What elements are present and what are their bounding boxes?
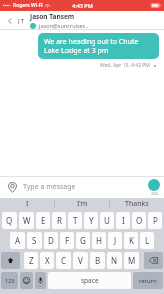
staticText: We are heading out to Chute Lake Lodge a… <box>44 37 153 55</box>
staticText: Z <box>29 255 34 266</box>
staticText: I <box>26 199 29 209</box>
button[interactable]: F <box>60 232 74 249</box>
button[interactable]: O <box>132 212 146 229</box>
button[interactable]: C <box>56 252 71 269</box>
button[interactable]: J <box>108 232 122 249</box>
button[interactable]: I <box>0 198 54 210</box>
button[interactable]: K <box>124 232 138 249</box>
staticText: J T <box>18 17 25 24</box>
staticText: E <box>41 215 46 226</box>
button[interactable]: W <box>19 212 34 229</box>
button[interactable]: Backspace <box>144 252 163 269</box>
button[interactable]: Back <box>4 15 16 27</box>
button[interactable]: D <box>44 232 58 249</box>
staticText: C <box>61 255 67 266</box>
staticText: H <box>96 235 102 246</box>
button[interactable]: X <box>40 252 54 269</box>
button[interactable]: P <box>148 212 162 229</box>
staticText: S <box>32 235 37 246</box>
button[interactable]: T <box>68 212 82 229</box>
button[interactable]: A <box>10 232 25 249</box>
staticText: space <box>81 276 99 285</box>
button[interactable]: Y <box>84 212 98 229</box>
staticText: Rogers Wi-Fi <box>13 2 43 9</box>
button[interactable]: Thanks <box>110 198 164 210</box>
staticText: R <box>57 215 62 226</box>
button[interactable]: I <box>116 212 130 229</box>
staticText: B <box>95 255 101 266</box>
button[interactable]: H <box>92 232 106 249</box>
button[interactable]: E <box>36 212 50 229</box>
button[interactable]: space <box>48 272 131 289</box>
button[interactable]: R <box>52 212 66 229</box>
staticText: K <box>129 235 134 246</box>
staticText: Wed, Apr 15, 4:42 PM <box>100 62 150 69</box>
staticText: D <box>48 235 54 246</box>
staticText: J <box>114 235 117 246</box>
button[interactable]: Share location <box>5 180 19 194</box>
button[interactable]: return <box>133 272 163 289</box>
staticText: U <box>104 215 110 226</box>
button[interactable]: Q <box>2 212 17 229</box>
staticText: I <box>122 215 125 226</box>
staticText: Thanks <box>125 199 149 209</box>
button[interactable]: M <box>124 252 139 269</box>
staticText: V <box>78 255 83 266</box>
button[interactable]: I'm <box>55 198 109 210</box>
button[interactable]: V <box>73 252 88 269</box>
staticText: T <box>73 215 78 226</box>
staticText: 226 <box>151 191 158 196</box>
staticText: P <box>153 215 158 226</box>
staticText: 123 <box>5 277 15 284</box>
button[interactable]: S <box>27 232 42 249</box>
button[interactable]: Shift <box>1 252 20 269</box>
staticText: return <box>139 277 157 285</box>
button[interactable]: L <box>140 232 154 249</box>
button[interactable]: Send <box>148 179 160 191</box>
button[interactable]: Z <box>24 252 38 269</box>
staticText: W <box>23 215 31 226</box>
staticText: Q <box>6 215 13 226</box>
button[interactable]: Type a message <box>23 182 148 192</box>
staticText: Y <box>89 215 94 226</box>
staticText: X <box>45 255 50 266</box>
button[interactable]: G <box>76 232 90 249</box>
staticText: Jason Tansem <box>30 12 75 21</box>
staticText: F <box>65 235 70 246</box>
button[interactable]: U <box>100 212 114 229</box>
button[interactable]: We are heading out to Chute Lake Lodge a… <box>38 33 159 59</box>
staticText: jason@suncruiser... <box>39 22 89 29</box>
button[interactable]: Dictation <box>35 272 46 289</box>
staticText: L <box>145 235 150 246</box>
staticText: O <box>136 215 143 226</box>
staticText: G <box>80 235 86 246</box>
staticText: 4:43 PM <box>72 2 93 9</box>
staticText: M <box>128 255 136 266</box>
staticText: A <box>15 235 21 246</box>
staticText: N <box>111 255 118 266</box>
button[interactable]: Emoji <box>20 272 33 289</box>
button[interactable]: B <box>90 252 105 269</box>
button[interactable]: 123 <box>1 272 18 289</box>
staticText: I'm <box>77 199 88 209</box>
button[interactable]: N <box>107 252 122 269</box>
